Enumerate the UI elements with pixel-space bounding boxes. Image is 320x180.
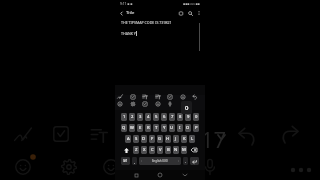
staticText: THANK Y bbox=[121, 31, 136, 36]
staticText: C bbox=[151, 147, 154, 153]
button[interactable]: 8 bbox=[177, 113, 183, 121]
button[interactable]: C bbox=[149, 146, 155, 154]
button[interactable]: 1 bbox=[121, 113, 127, 121]
button[interactable]: Keyboard tool 3 bbox=[144, 96, 151, 103]
staticText: X bbox=[143, 147, 146, 153]
button[interactable]: Keyboard tool 5 bbox=[169, 96, 176, 103]
staticText: Title bbox=[126, 10, 135, 16]
button[interactable]: B bbox=[165, 146, 171, 154]
button[interactable]: T bbox=[153, 124, 159, 132]
staticText: V bbox=[159, 147, 162, 153]
staticText: ‹ bbox=[141, 159, 142, 163]
button[interactable]: Keyboard tool 6 bbox=[182, 96, 189, 103]
button[interactable]: E bbox=[137, 124, 143, 132]
button[interactable]: Keyboard tool 10 bbox=[144, 103, 151, 110]
staticText: O bbox=[186, 125, 190, 131]
staticText: , bbox=[134, 159, 135, 164]
button[interactable]: Keyboard tool 8 bbox=[119, 103, 126, 110]
button[interactable]: More options bbox=[196, 10, 202, 16]
staticText: !#1 bbox=[123, 159, 128, 163]
staticText: T bbox=[155, 125, 158, 131]
button[interactable]: 4 bbox=[145, 113, 151, 121]
staticText: P bbox=[195, 125, 198, 131]
button[interactable]: , bbox=[132, 157, 137, 165]
staticText: I bbox=[179, 125, 181, 131]
staticText: R bbox=[147, 125, 150, 131]
button[interactable]: Y bbox=[161, 124, 167, 132]
button[interactable]: Enter bbox=[190, 157, 199, 165]
button[interactable]: O bbox=[185, 124, 191, 132]
staticText: J bbox=[175, 136, 177, 142]
button[interactable]: Shift bbox=[121, 146, 131, 154]
button[interactable]: M bbox=[181, 146, 187, 154]
staticText: . bbox=[185, 159, 186, 164]
staticText: U bbox=[170, 125, 174, 131]
button[interactable]: 2 bbox=[129, 113, 135, 121]
button[interactable]: Backspace bbox=[189, 146, 199, 154]
button[interactable]: U bbox=[169, 124, 175, 132]
staticText: 3 bbox=[139, 114, 142, 120]
button[interactable]: 9 bbox=[185, 113, 191, 121]
button[interactable]: 3 bbox=[137, 113, 143, 121]
button[interactable]: N bbox=[173, 146, 179, 154]
button[interactable]: 7 bbox=[169, 113, 175, 121]
button[interactable]: L bbox=[189, 135, 195, 143]
button[interactable]: S bbox=[133, 135, 139, 143]
button[interactable]: . bbox=[183, 157, 188, 165]
button[interactable]: Search bbox=[187, 10, 194, 17]
button[interactable]: K bbox=[181, 135, 187, 143]
button[interactable]: Keyboard tool 7 bbox=[194, 96, 201, 103]
staticText: Q bbox=[122, 125, 126, 131]
button[interactable]: G bbox=[157, 135, 163, 143]
staticText: 0 bbox=[195, 114, 198, 120]
button[interactable]: Keyboard tool 2 bbox=[132, 96, 139, 103]
button[interactable]: Home bbox=[156, 171, 164, 179]
staticText: K bbox=[183, 136, 186, 142]
button[interactable]: D bbox=[141, 135, 147, 143]
button[interactable]: Z bbox=[133, 146, 139, 154]
button[interactable]: V bbox=[157, 146, 163, 154]
staticText: E bbox=[139, 125, 142, 131]
button[interactable]: W bbox=[129, 124, 135, 132]
button[interactable]: Keyboard tool 11 bbox=[157, 103, 164, 110]
button[interactable]: F bbox=[149, 135, 155, 143]
button[interactable]: 6 bbox=[161, 113, 167, 121]
staticText: B bbox=[167, 147, 170, 153]
button[interactable]: Video call bbox=[178, 10, 185, 17]
button[interactable]: ‹ bbox=[139, 157, 181, 165]
button[interactable]: Keyboard tool 1 bbox=[119, 96, 126, 103]
staticText: W bbox=[130, 125, 134, 131]
button[interactable]: A bbox=[125, 135, 131, 143]
staticText: A bbox=[127, 136, 130, 142]
button[interactable]: Q bbox=[121, 124, 127, 132]
button[interactable]: 5 bbox=[153, 113, 159, 121]
button[interactable]: Recents bbox=[132, 171, 140, 179]
staticText: 0 bbox=[185, 104, 189, 112]
button[interactable]: Keyboard tool 4 bbox=[157, 96, 164, 103]
staticText: 2 bbox=[131, 114, 134, 120]
button[interactable]: I bbox=[177, 124, 183, 132]
staticText: M bbox=[182, 147, 186, 153]
button[interactable]: 0 bbox=[193, 113, 199, 121]
button[interactable]: P bbox=[193, 124, 199, 132]
staticText: S bbox=[135, 136, 138, 142]
staticText: L bbox=[191, 136, 194, 142]
staticText: 17 bbox=[201, 124, 227, 154]
button[interactable]: Keyboard tool 9 bbox=[132, 103, 139, 110]
staticText: 1 bbox=[123, 114, 126, 120]
button[interactable]: Keyboard tool 12 bbox=[169, 103, 176, 110]
button[interactable]: Keyboard tool 13 bbox=[182, 103, 189, 110]
staticText: 4 bbox=[147, 114, 150, 120]
staticText: H bbox=[166, 136, 170, 142]
button[interactable]: R bbox=[145, 124, 151, 132]
button[interactable]: J bbox=[173, 135, 179, 143]
staticText: ▪▪▪ ▫▫ ▪▪ bbox=[183, 2, 200, 6]
button[interactable]: Back bbox=[181, 171, 189, 179]
button[interactable]: !#1 bbox=[121, 157, 130, 165]
button[interactable]: Back bbox=[118, 10, 125, 17]
staticText: N bbox=[174, 147, 178, 153]
staticText: 9 bbox=[187, 114, 190, 120]
button[interactable]: X bbox=[141, 146, 147, 154]
button[interactable]: H bbox=[165, 135, 171, 143]
